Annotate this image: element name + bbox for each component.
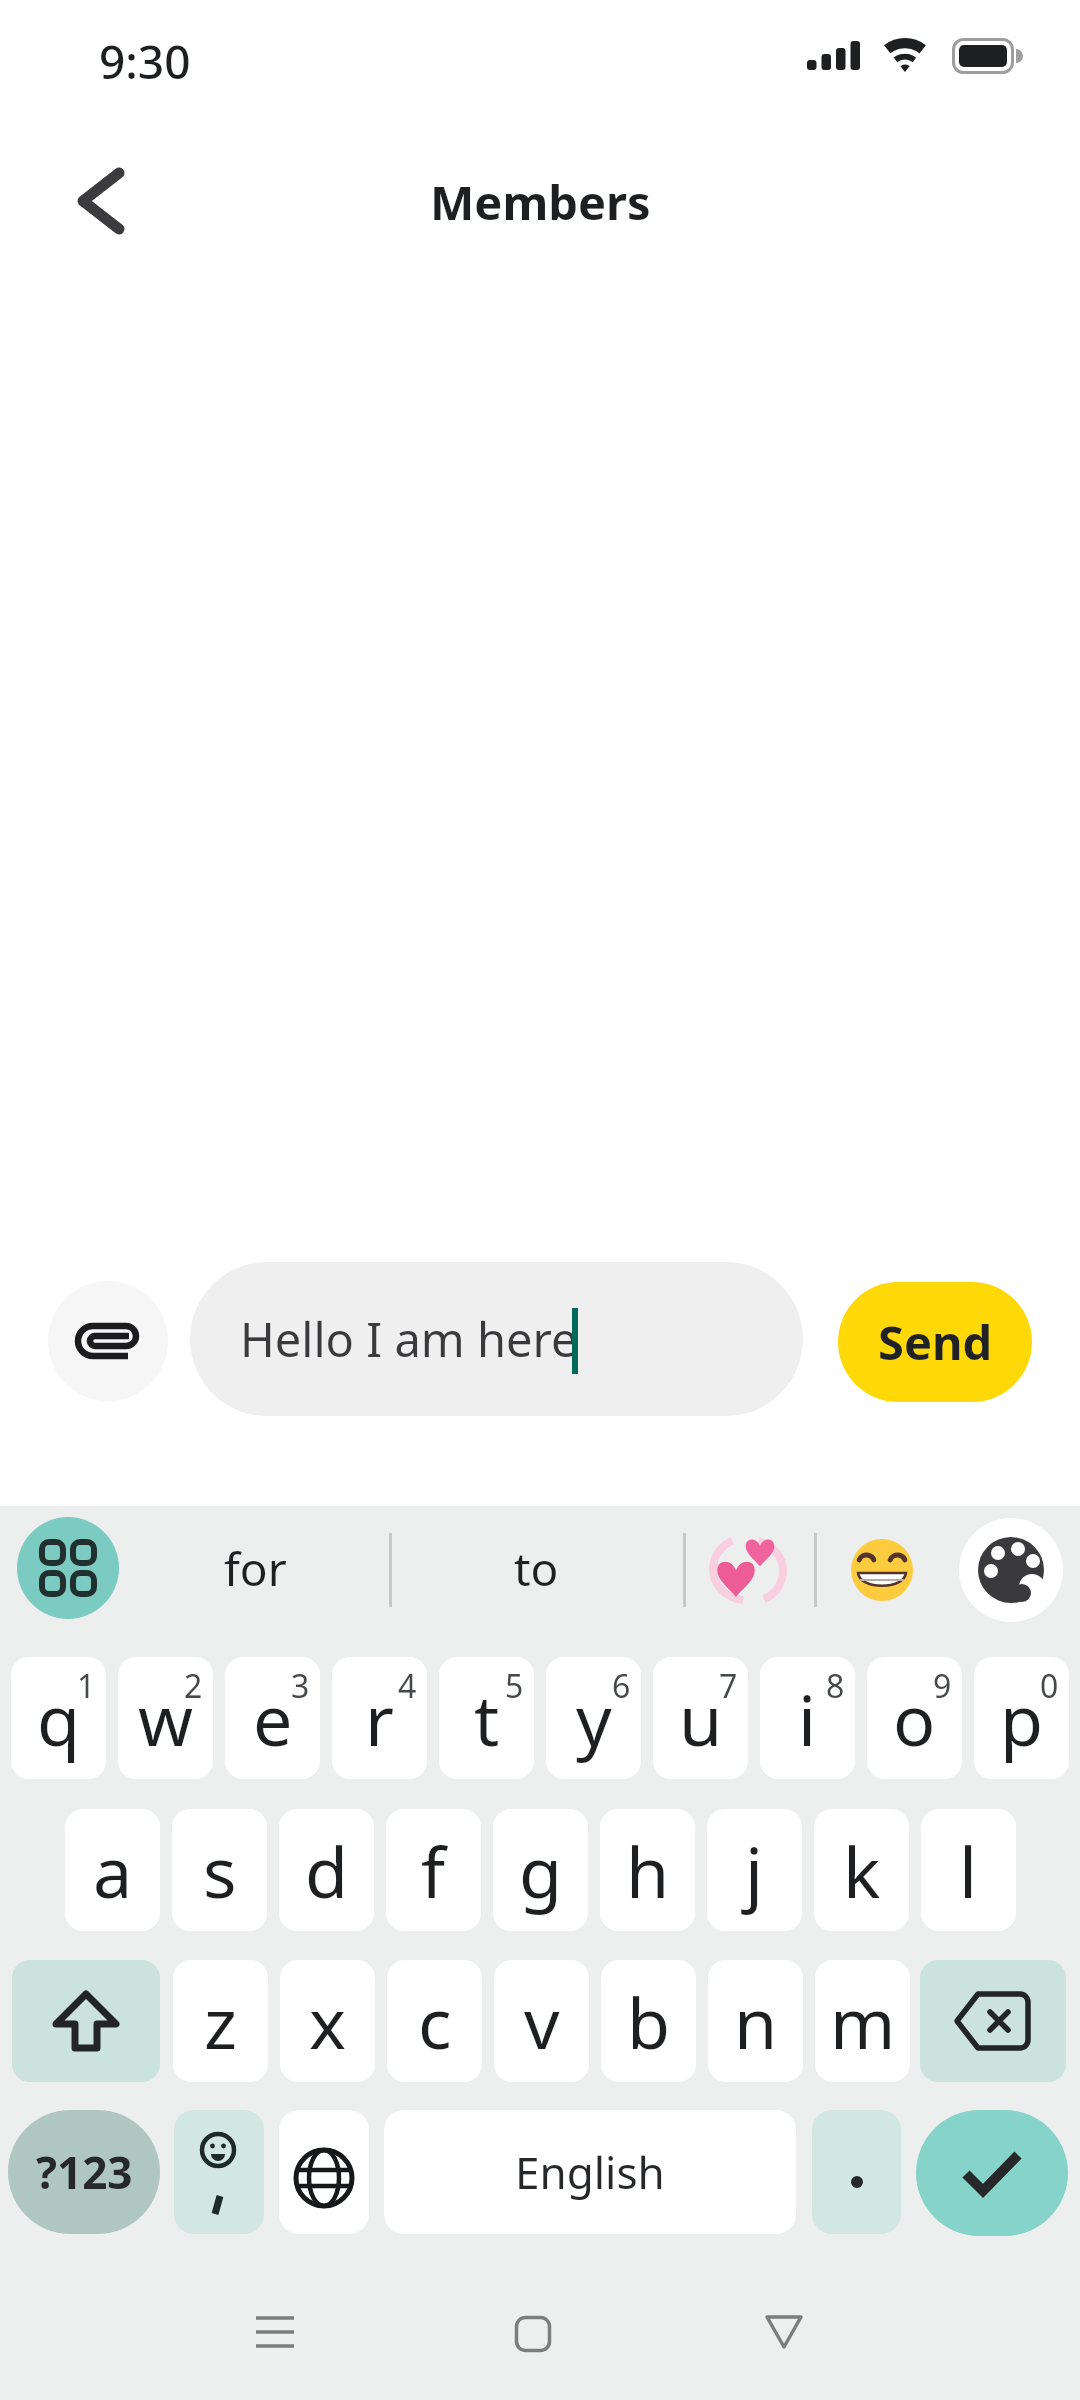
button[interactable] xyxy=(12,1960,160,2082)
button[interactable]: i xyxy=(760,1657,855,1779)
staticText: 0 xyxy=(1040,1664,1059,1708)
button[interactable]: f xyxy=(386,1809,481,1931)
button[interactable]: e xyxy=(225,1657,320,1779)
button[interactable]: to xyxy=(390,1517,682,1619)
staticText: c xyxy=(418,1974,452,2069)
button[interactable] xyxy=(812,2110,901,2234)
button[interactable]: g xyxy=(493,1809,588,1931)
staticText: g xyxy=(519,1823,563,1918)
staticText: Hello I am here xyxy=(240,1307,578,1371)
button[interactable]: q xyxy=(11,1657,106,1779)
button[interactable]: a xyxy=(65,1809,160,1931)
button[interactable]: t xyxy=(439,1657,534,1779)
staticText: p xyxy=(1000,1671,1044,1766)
button[interactable]: z xyxy=(173,1960,268,2082)
button[interactable]: o xyxy=(867,1657,962,1779)
staticText: h xyxy=(626,1823,670,1918)
staticText: s xyxy=(203,1823,237,1918)
staticText: r xyxy=(365,1671,394,1766)
button[interactable]: w xyxy=(118,1657,213,1779)
staticText: Send xyxy=(878,1310,993,1374)
staticText: x xyxy=(309,1974,347,2069)
staticText: Members xyxy=(430,170,651,230)
staticText: o xyxy=(893,1671,936,1766)
button[interactable]: y xyxy=(546,1657,641,1779)
staticText: d xyxy=(305,1823,349,1918)
button[interactable]: n xyxy=(708,1960,803,2082)
staticText: l xyxy=(959,1823,978,1918)
staticText: to xyxy=(514,1537,559,1600)
staticText: u xyxy=(679,1671,723,1766)
button[interactable] xyxy=(247,2303,303,2361)
button[interactable] xyxy=(56,156,146,246)
staticText: i xyxy=(798,1671,817,1766)
button[interactable]: j xyxy=(707,1809,802,1931)
staticText: 9 xyxy=(933,1664,952,1708)
button[interactable]: Hello I am here xyxy=(190,1262,803,1416)
staticText: for xyxy=(224,1537,287,1600)
button[interactable]: r xyxy=(332,1657,427,1779)
staticText: b xyxy=(627,1974,671,2069)
staticText: z xyxy=(204,1974,237,2069)
staticText: f xyxy=(421,1823,446,1918)
button[interactable] xyxy=(505,2305,561,2363)
staticText: English xyxy=(515,2142,665,2202)
staticText: 5 xyxy=(505,1664,524,1708)
button[interactable]: c xyxy=(387,1960,482,2082)
button[interactable] xyxy=(916,2110,1068,2236)
button[interactable]: for xyxy=(120,1517,390,1619)
staticText: e xyxy=(253,1671,293,1766)
button[interactable] xyxy=(756,2303,812,2361)
button[interactable] xyxy=(48,1281,168,1401)
staticText: n xyxy=(734,1974,778,2069)
button[interactable]: m xyxy=(815,1960,910,2082)
staticText: 1 xyxy=(77,1664,96,1708)
staticText: 2 xyxy=(184,1664,203,1708)
button[interactable]: p xyxy=(974,1657,1069,1779)
button[interactable]: h xyxy=(600,1809,695,1931)
staticText: a xyxy=(93,1823,133,1918)
staticText: t xyxy=(474,1671,500,1766)
button[interactable] xyxy=(920,1960,1066,2082)
staticText: q xyxy=(37,1671,81,1766)
staticText: 3 xyxy=(291,1664,310,1708)
button[interactable] xyxy=(279,2110,369,2234)
staticText: 8 xyxy=(826,1664,845,1708)
staticText: m xyxy=(830,1974,896,2069)
button[interactable]: u xyxy=(653,1657,748,1779)
button[interactable] xyxy=(17,1517,119,1619)
button[interactable]: Send xyxy=(838,1282,1032,1402)
button[interactable] xyxy=(712,1534,784,1606)
staticText: 6 xyxy=(612,1664,631,1708)
button[interactable]: b xyxy=(601,1960,696,2082)
button[interactable]: d xyxy=(279,1809,374,1931)
staticText: 4 xyxy=(398,1664,417,1708)
button[interactable]: s xyxy=(172,1809,267,1931)
button[interactable]: x xyxy=(280,1960,375,2082)
button[interactable]: k xyxy=(814,1809,909,1931)
staticText: ?123 xyxy=(36,2142,133,2202)
staticText: j xyxy=(745,1823,764,1918)
staticText: w xyxy=(138,1671,194,1766)
staticText: y xyxy=(576,1671,612,1766)
button[interactable] xyxy=(848,1536,916,1604)
button[interactable] xyxy=(174,2110,264,2234)
button[interactable]: English xyxy=(384,2110,796,2234)
button[interactable] xyxy=(959,1518,1063,1622)
staticText: 9:30 xyxy=(99,30,191,86)
button[interactable]: ?123 xyxy=(8,2110,160,2234)
button[interactable]: l xyxy=(921,1809,1016,1931)
staticText: k xyxy=(843,1823,881,1918)
staticText: v xyxy=(524,1974,560,2069)
staticText: 7 xyxy=(719,1664,738,1708)
button[interactable]: v xyxy=(494,1960,589,2082)
